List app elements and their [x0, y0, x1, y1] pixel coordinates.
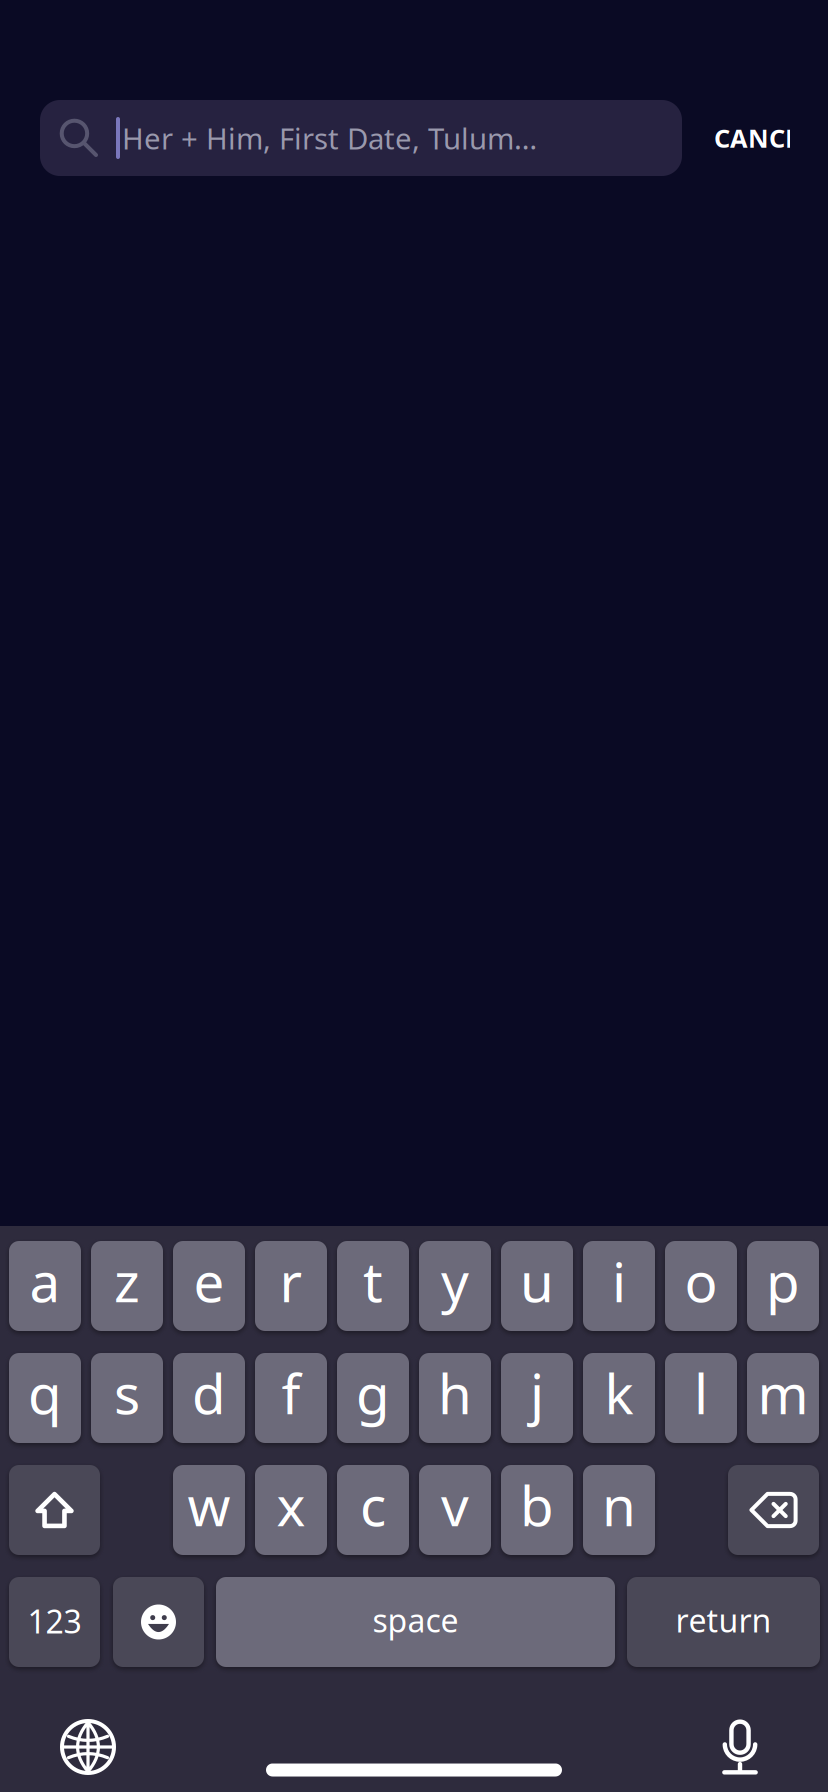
button[interactable]: f: [255, 1353, 327, 1443]
staticText: d: [192, 1357, 226, 1429]
button[interactable]: h: [419, 1353, 491, 1443]
staticText: a: [29, 1245, 60, 1317]
staticText: p: [766, 1245, 800, 1317]
button[interactable]: q: [9, 1353, 81, 1443]
button[interactable]: m: [747, 1353, 819, 1443]
staticText: y: [441, 1245, 469, 1317]
button[interactable]: Delete: [728, 1465, 819, 1555]
staticText: g: [356, 1357, 390, 1429]
button[interactable]: x: [255, 1465, 327, 1555]
staticText: t: [363, 1245, 383, 1317]
staticText: v: [441, 1469, 469, 1541]
button[interactable]: g: [337, 1353, 409, 1443]
button[interactable]: t: [337, 1241, 409, 1331]
staticText: k: [604, 1357, 633, 1429]
button[interactable]: n: [583, 1465, 655, 1555]
button[interactable]: b: [501, 1465, 573, 1555]
staticText: e: [193, 1245, 224, 1317]
button[interactable]: s: [91, 1353, 163, 1443]
staticText: f: [281, 1357, 300, 1429]
button[interactable]: return: [627, 1577, 820, 1667]
button[interactable]: d: [173, 1353, 245, 1443]
button[interactable]: w: [173, 1465, 245, 1555]
button[interactable]: space: [216, 1577, 615, 1667]
button[interactable]: k: [583, 1353, 655, 1443]
staticText: j: [530, 1357, 544, 1429]
staticText: z: [114, 1245, 140, 1317]
button[interactable]: u: [501, 1241, 573, 1331]
staticText: return: [675, 1599, 771, 1641]
staticText: 123: [27, 1600, 81, 1642]
button[interactable]: c: [337, 1465, 409, 1555]
staticText: o: [684, 1245, 717, 1317]
staticText: b: [520, 1469, 554, 1541]
button[interactable]: Switch keyboard language: [43, 1702, 133, 1792]
button[interactable]: y: [419, 1241, 491, 1331]
staticText: u: [520, 1245, 554, 1317]
button[interactable]: e: [173, 1241, 245, 1331]
button[interactable]: CANCEL: [714, 108, 790, 168]
button[interactable]: z: [91, 1241, 163, 1331]
staticText: m: [757, 1357, 808, 1429]
button[interactable]: Dictation: [695, 1702, 785, 1792]
staticText: space: [372, 1599, 458, 1641]
staticText: s: [114, 1357, 140, 1429]
button[interactable]: r: [255, 1241, 327, 1331]
staticText: l: [694, 1357, 708, 1429]
button[interactable]: o: [665, 1241, 737, 1331]
button[interactable]: l: [665, 1353, 737, 1443]
button[interactable]: v: [419, 1465, 491, 1555]
button[interactable]: 123: [9, 1577, 100, 1667]
staticText: h: [438, 1357, 472, 1429]
button[interactable]: Her + Him, First Date, Tulum…: [40, 100, 682, 176]
staticText: n: [602, 1469, 636, 1541]
button[interactable]: p: [747, 1241, 819, 1331]
button[interactable]: a: [9, 1241, 81, 1331]
staticText: Her + Him, First Date, Tulum…: [122, 118, 537, 157]
button[interactable]: Shift: [9, 1465, 100, 1555]
staticText: x: [276, 1469, 305, 1541]
staticText: q: [28, 1357, 62, 1429]
button[interactable]: j: [501, 1353, 573, 1443]
staticText: CANCEL: [714, 121, 813, 155]
button[interactable]: i: [583, 1241, 655, 1331]
staticText: c: [360, 1469, 386, 1541]
staticText: w: [187, 1469, 230, 1541]
button[interactable]: Emoji: [113, 1577, 204, 1667]
staticText: i: [612, 1245, 626, 1317]
staticText: r: [279, 1245, 302, 1317]
